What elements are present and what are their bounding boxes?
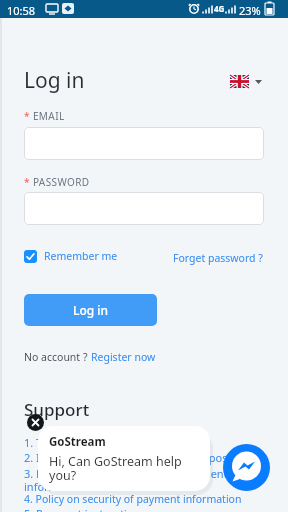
button[interactable] [24,192,264,225]
button[interactable]: 5. Payment instructions [24,506,146,512]
button[interactable] [24,127,264,160]
button[interactable]: 1. Tutorial for using GoStream [24,435,180,450]
staticText: Remember me [44,249,118,263]
button[interactable]: Register now [91,350,156,364]
button[interactable] [27,414,44,431]
staticText: GoStream [49,434,106,450]
button[interactable]: Forget password ? [173,251,263,265]
button[interactable]: Log in [24,294,157,326]
staticText: * EMAIL [24,109,65,123]
button[interactable]: Remember me [24,249,118,263]
staticText: 4G [214,3,225,14]
button[interactable] [228,74,264,92]
button[interactable]: 3. Regulations on refunds and payments [24,466,233,481]
button[interactable] [223,444,270,491]
staticText: Hi, Can GoStream help you? [49,453,182,484]
staticText: information [24,479,86,494]
staticText: Log in [24,66,85,95]
staticText: 10:58 [7,3,36,18]
staticText: Log in [73,302,109,318]
button[interactable]: 2. Instructions on how to make a deposit [24,450,235,465]
staticText: Support [24,398,90,421]
staticText: No account ? [24,350,91,364]
staticText: 23% [239,3,261,18]
staticText: * PASSWORD [24,175,90,189]
button[interactable]: 4. Policy on security of payment informa… [24,492,242,506]
